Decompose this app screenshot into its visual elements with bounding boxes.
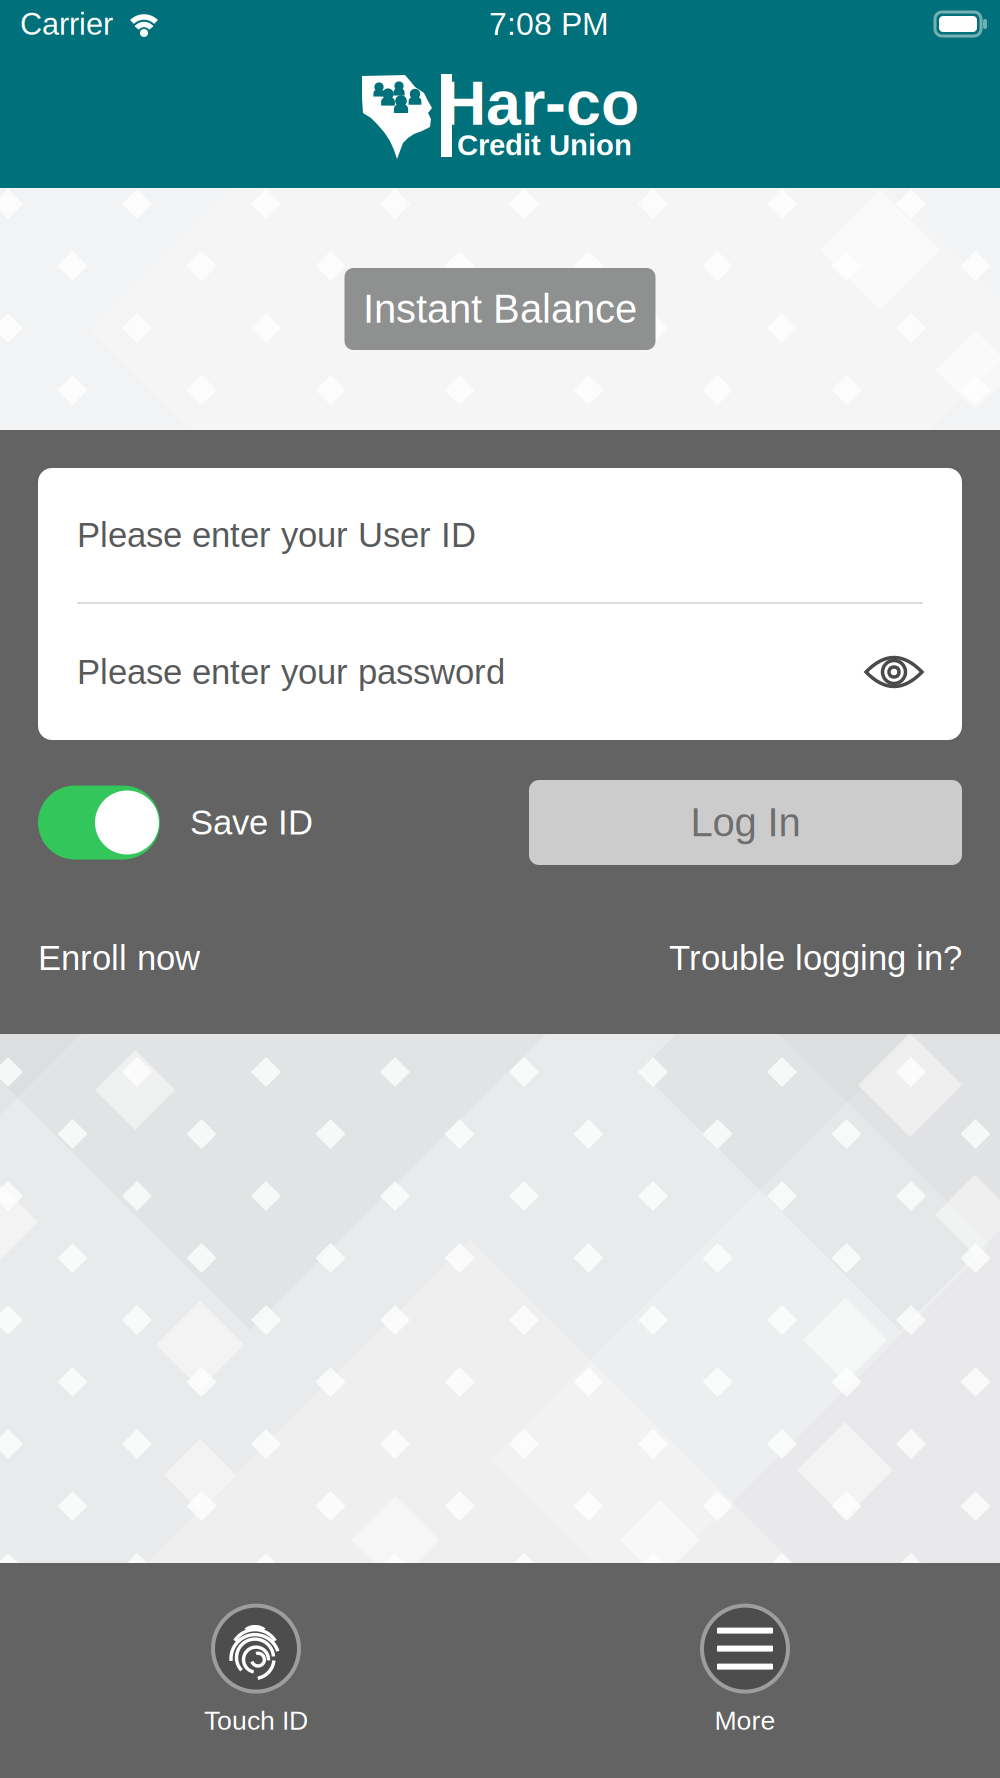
button[interactable]: Enroll now xyxy=(38,939,200,977)
button[interactable]: Trouble logging in? xyxy=(669,939,962,977)
staticText: Enroll now xyxy=(38,939,200,977)
staticText: Credit Union xyxy=(457,129,632,161)
staticText: Carrier xyxy=(20,7,113,41)
button[interactable]: Log In xyxy=(529,780,962,865)
button[interactable]: Instant Balance xyxy=(344,268,655,350)
staticText: Har-co xyxy=(441,68,639,138)
staticText: Log In xyxy=(690,800,800,845)
staticText: 7:08 PM xyxy=(489,6,609,42)
button[interactable]: More xyxy=(639,1575,851,1765)
staticText: Touch ID xyxy=(204,1706,308,1735)
staticText: Please enter your User ID xyxy=(77,516,476,554)
button[interactable]: Save ID xyxy=(38,785,313,859)
button[interactable]: Touch ID xyxy=(150,1575,362,1765)
staticText: More xyxy=(714,1706,775,1735)
staticText: Instant Balance xyxy=(363,287,637,331)
staticText: Trouble logging in? xyxy=(669,939,962,977)
staticText: Save ID xyxy=(190,803,313,842)
staticText: Please enter your password xyxy=(77,653,505,691)
